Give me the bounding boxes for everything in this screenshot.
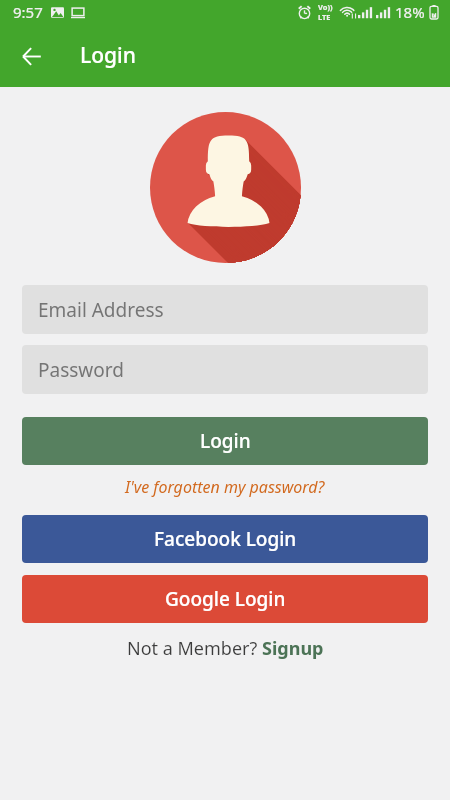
button[interactable]: Login [22,417,428,465]
staticText: Google Login [165,586,286,612]
staticText: LTE [318,12,331,22]
button[interactable]: I've forgotten my password? [0,470,450,504]
staticText: Password [38,357,124,383]
staticText: I've forgotten my password? [125,476,325,498]
staticText: 9:57 [13,2,43,22]
button[interactable]: Google Login [22,575,428,623]
button[interactable]: Password [22,345,428,394]
staticText: Email Address [38,297,164,323]
button[interactable]: Facebook Login [22,515,428,563]
staticText: Login [80,41,136,70]
button[interactable]: Email Address [22,285,428,334]
button[interactable]: Signup [262,636,324,661]
staticText: 18% [395,2,425,22]
staticText: Not a Member? [127,636,262,661]
staticText: Signup [262,636,324,661]
staticText: Login [200,428,251,454]
button[interactable]: Back [9,34,53,78]
staticText: Vo)) [318,2,333,12]
staticText: Facebook Login [154,526,297,552]
